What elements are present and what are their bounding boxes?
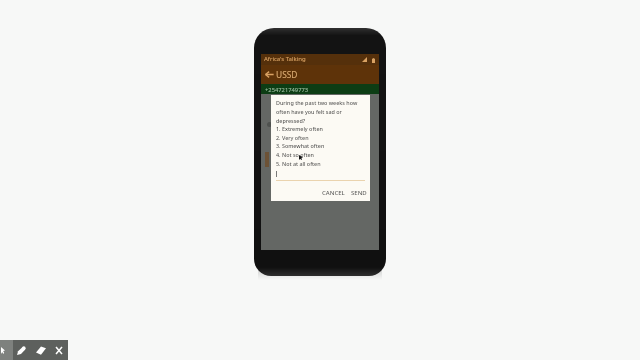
- staticText: Africa's Talking: [264, 55, 306, 63]
- button[interactable]: Close: [51, 340, 68, 360]
- staticText: often have you felt sad or: [276, 108, 342, 115]
- staticText: USSD: [276, 69, 298, 80]
- staticText: 3. Somewhat often: [276, 142, 325, 149]
- button[interactable]: Back: [265, 70, 274, 79]
- staticText: During the past two weeks how: [276, 99, 358, 106]
- staticText: 5. Not at all often: [276, 160, 321, 167]
- staticText: 2. Very often: [276, 134, 309, 141]
- staticText: CANCEL: [322, 189, 345, 197]
- staticText: 1. Extremely often: [276, 125, 323, 132]
- staticText: depressed?: [276, 117, 306, 124]
- staticText: +254721749773: [265, 86, 309, 94]
- button[interactable]: SEND: [349, 187, 369, 198]
- button[interactable]: Eraser: [34, 340, 51, 360]
- button[interactable]: CANCEL: [320, 187, 347, 198]
- button[interactable]: Pen: [13, 340, 34, 360]
- staticText: 4. Not so often: [276, 151, 314, 158]
- staticText: SEND: [351, 189, 367, 197]
- button[interactable]: Select pointer: [0, 340, 13, 360]
